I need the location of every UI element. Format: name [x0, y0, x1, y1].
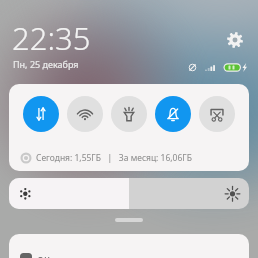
staticText: Сегодня: 1,55ГБ | За месяц: 16,06ГБ — [36, 152, 192, 164]
button[interactable]: Screenshot — [199, 96, 235, 132]
button[interactable]: Do not disturb — [155, 96, 191, 132]
button[interactable]: Wi-Fi — [67, 96, 103, 132]
staticText: ОК — [37, 254, 50, 258]
button[interactable]: Brightness — [9, 178, 249, 209]
staticText: 22:35 — [12, 17, 91, 59]
button[interactable]: Flashlight — [111, 96, 147, 132]
button[interactable]: Mobile data — [23, 96, 59, 132]
staticText: Пн, 25 декабря — [13, 58, 79, 70]
button[interactable]: ОК — [9, 234, 249, 258]
button[interactable]: Settings — [227, 32, 243, 48]
